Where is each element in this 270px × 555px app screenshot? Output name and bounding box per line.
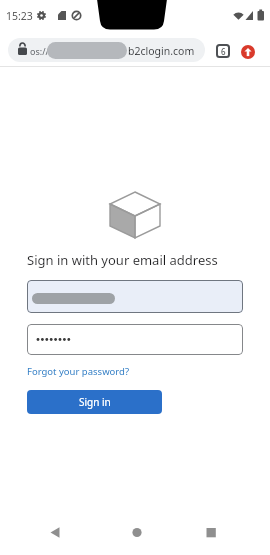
- button[interactable]: 6: [216, 44, 230, 58]
- button[interactable]: os://: [8, 38, 205, 62]
- staticText: Sign in with your email address: [27, 251, 218, 269]
- staticText: os://: [30, 45, 49, 57]
- staticText: Sign in: [79, 395, 111, 409]
- button[interactable]: [27, 324, 243, 355]
- button[interactable]: Forgot your password?: [27, 365, 130, 378]
- button[interactable]: [241, 45, 255, 59]
- staticText: 6: [221, 46, 226, 57]
- button[interactable]: Sign in: [27, 390, 162, 414]
- staticText: 15:23: [6, 9, 33, 23]
- staticText: b2clogin.com: [128, 44, 195, 58]
- button[interactable]: [27, 280, 243, 313]
